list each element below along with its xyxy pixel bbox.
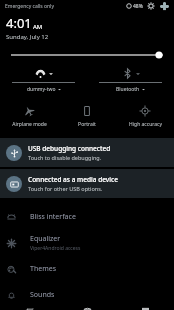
staticText: Bliss interface xyxy=(30,212,76,222)
button[interactable]: Equalizer xyxy=(0,230,174,256)
staticText: USB debugging connected xyxy=(28,144,111,153)
button[interactable]: Recents xyxy=(116,308,174,310)
staticText: Portrait xyxy=(78,121,96,128)
staticText: 48% xyxy=(133,3,143,10)
button[interactable]: Connected as a media device xyxy=(0,169,174,198)
staticText: Airplane mode xyxy=(12,121,47,128)
staticText: Sunday, July 12 xyxy=(6,33,49,41)
button[interactable]: Portrait xyxy=(58,102,116,128)
staticText: Bluetooth xyxy=(116,86,140,93)
button[interactable]: dummy-two xyxy=(12,66,75,93)
button[interactable]: High accuracy xyxy=(116,102,174,128)
staticText: Emergency calls only xyxy=(5,3,54,10)
button[interactable]: Bluetooth xyxy=(99,66,162,93)
staticText: Viper4Android access xyxy=(30,245,81,252)
staticText: High accuracy xyxy=(129,121,162,128)
button[interactable]: Themes xyxy=(0,256,174,282)
button[interactable]: Sounds xyxy=(0,282,174,308)
staticText: Sounds xyxy=(30,290,55,300)
button[interactable]: Bliss interface xyxy=(0,204,174,230)
button[interactable]: Brightness xyxy=(0,48,174,62)
button[interactable]: USB debugging connected xyxy=(0,138,174,167)
button[interactable]: Airplane mode xyxy=(0,102,58,128)
button[interactable]: Home xyxy=(58,308,116,310)
button[interactable]: Back xyxy=(0,308,58,310)
staticText: Touch to disable debugging. xyxy=(28,154,102,161)
staticText: Touch for other USB options. xyxy=(28,185,103,192)
staticText: Themes xyxy=(30,264,57,274)
staticText: dummy-two xyxy=(27,86,56,93)
staticText: Connected as a media device xyxy=(28,175,118,184)
staticText: Equalizer xyxy=(30,234,61,244)
staticText: 4:01 xyxy=(6,14,32,32)
staticText: AM xyxy=(33,23,43,31)
